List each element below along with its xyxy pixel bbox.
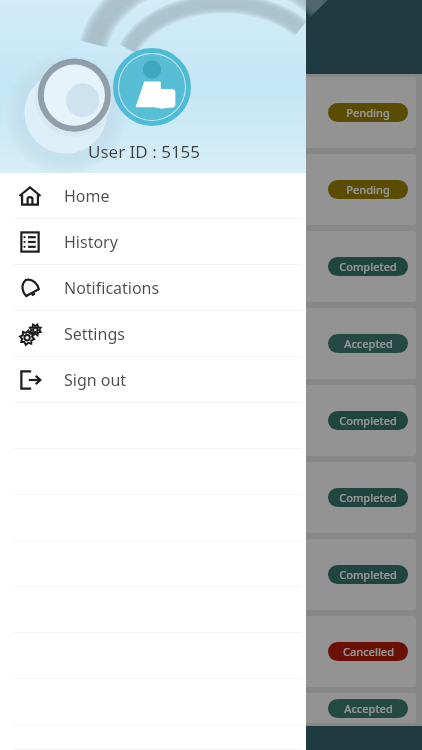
button[interactable]: Pending bbox=[10, 154, 416, 225]
staticText: Notifications bbox=[64, 277, 160, 299]
button[interactable]: Pending bbox=[10, 77, 416, 148]
staticText: Pending bbox=[346, 105, 390, 120]
staticText: History bbox=[64, 231, 118, 253]
button[interactable]: Completed bbox=[10, 539, 416, 610]
staticText: Completed bbox=[339, 567, 397, 582]
button[interactable]: Completed bbox=[10, 231, 416, 302]
staticText: Settings bbox=[64, 323, 125, 345]
staticText: User ID : 5155 bbox=[88, 140, 201, 163]
staticText: Home bbox=[64, 185, 110, 207]
staticText: Pending bbox=[346, 182, 390, 197]
staticText: Accepted bbox=[344, 701, 393, 716]
staticText: Appointment bbox=[20, 324, 101, 342]
staticText: 12 Jan 2021 bbox=[20, 194, 80, 209]
staticText: Appointment bbox=[20, 170, 101, 188]
button[interactable]: Settings bbox=[0, 311, 306, 357]
staticText: Accepted bbox=[344, 336, 393, 351]
button[interactable]: Home bbox=[0, 173, 306, 219]
staticText: Completed bbox=[339, 413, 397, 428]
staticText: Completed bbox=[339, 259, 397, 274]
staticText: Sign out bbox=[64, 369, 127, 391]
staticText: Cancelled bbox=[343, 644, 394, 659]
button[interactable]: Accepted bbox=[10, 693, 416, 723]
button[interactable]: Notifications bbox=[0, 265, 306, 311]
staticText: Completed bbox=[339, 490, 397, 505]
staticText: Appointment bbox=[20, 93, 101, 111]
staticText: 12 Jan 2021 bbox=[20, 117, 80, 132]
button[interactable]: Accepted bbox=[10, 308, 416, 379]
button[interactable]: Completed bbox=[10, 462, 416, 533]
button[interactable]: Completed bbox=[10, 385, 416, 456]
staticText: Appointment bbox=[20, 247, 101, 265]
staticText: 12 Jan 2021 bbox=[20, 271, 80, 286]
staticText: 12 Jan 2021 bbox=[20, 348, 80, 363]
button[interactable]: History bbox=[0, 219, 306, 265]
button[interactable]: Cancelled bbox=[10, 616, 416, 687]
button[interactable]: Sign out bbox=[0, 357, 306, 403]
